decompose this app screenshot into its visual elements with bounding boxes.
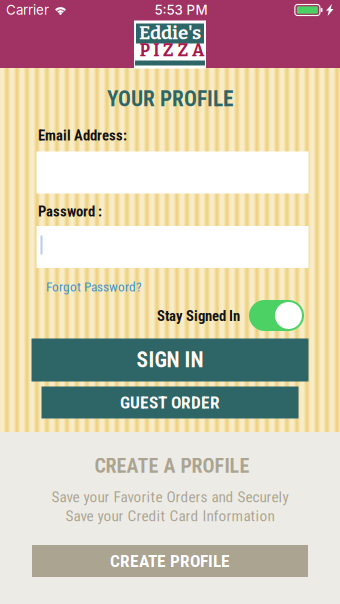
- button[interactable]: GUEST ORDER: [41, 386, 298, 418]
- staticText: Eddie's: [139, 22, 201, 44]
- button[interactable]: Stay Signed In: [249, 300, 304, 331]
- staticText: Forgot Password?: [46, 279, 142, 295]
- staticText: Email Address:: [38, 127, 127, 144]
- staticText: Carrier: [6, 2, 49, 18]
- staticText: GUEST ORDER: [120, 392, 220, 413]
- staticText: Save your Favorite Orders and Securely: [51, 488, 288, 506]
- staticText: YOUR PROFILE: [107, 86, 233, 111]
- staticText: Stay Signed In: [157, 307, 240, 325]
- staticText: 5:53 PM: [154, 2, 207, 18]
- staticText: CREATE PROFILE: [110, 551, 230, 571]
- staticText: Password :: [38, 203, 102, 220]
- button[interactable]: CREATE PROFILE: [32, 545, 308, 577]
- button[interactable]: Forgot Password?: [46, 280, 166, 294]
- staticText: SIGN IN: [136, 347, 203, 372]
- staticText: Save your Credit Card Information: [65, 507, 274, 525]
- staticText: PIZZA: [140, 40, 204, 61]
- staticText: CREATE A PROFILE: [94, 454, 249, 478]
- button[interactable]: SIGN IN: [31, 338, 308, 381]
